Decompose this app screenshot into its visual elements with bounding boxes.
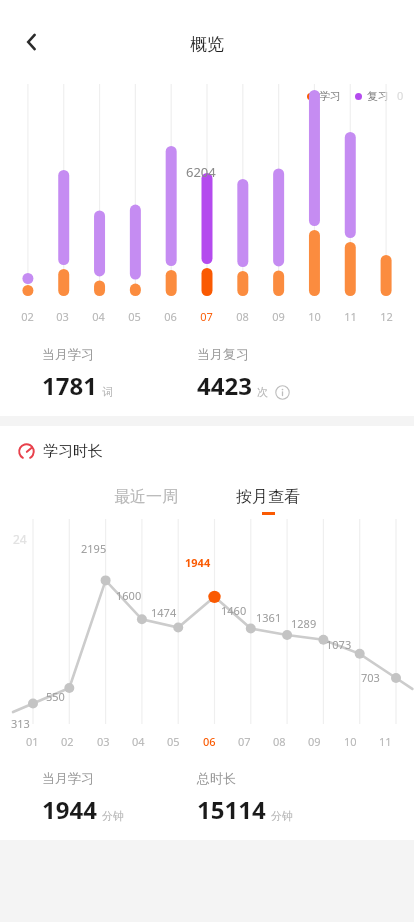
staticText: 01 (26, 734, 39, 749)
staticText: 12 (380, 309, 393, 324)
staticText: 2195 (81, 541, 107, 556)
staticText: 当月复习 (197, 346, 249, 362)
button[interactable]: 最近一周 (100, 483, 192, 511)
staticText: 6204 (186, 163, 216, 181)
staticText: 次 (257, 385, 268, 399)
staticText: 09 (272, 309, 285, 324)
button[interactable]: 当月学习 (42, 346, 197, 402)
staticText: 703 (361, 670, 380, 685)
staticText: 1073 (326, 637, 352, 652)
button[interactable]: 当月复习 (197, 346, 290, 402)
staticText: 05 (128, 309, 141, 324)
staticText: 04 (92, 309, 105, 324)
button[interactable]: 按月查看 (222, 483, 314, 519)
button[interactable]: 总时长 (197, 770, 293, 826)
staticText: 当月学习 (42, 346, 94, 362)
staticText: 学习 (319, 89, 341, 103)
staticText: 11 (344, 309, 357, 324)
staticText: 1781 (42, 369, 97, 402)
staticText: 15114 (197, 793, 266, 826)
staticText: 06 (164, 309, 177, 324)
staticText: 08 (273, 734, 286, 749)
staticText: 04 (132, 734, 145, 749)
staticText: 分钟 (102, 809, 124, 823)
staticText: 1944 (42, 793, 97, 826)
staticText: 1460 (221, 603, 247, 618)
button[interactable]: Back (8, 18, 56, 66)
button[interactable]: 当月学习 (42, 770, 197, 826)
staticText: 02 (61, 734, 74, 749)
staticText: 当月学习 (42, 770, 94, 786)
staticText: 24 (13, 531, 27, 547)
staticText: 550 (46, 689, 65, 704)
staticText: 07 (238, 734, 251, 749)
staticText: 08 (236, 309, 249, 324)
staticText: 03 (56, 309, 69, 324)
staticText: 11 (379, 734, 392, 749)
staticText: 0 (397, 88, 404, 103)
button[interactable]: Info (275, 385, 290, 400)
staticText: 1944 (185, 555, 211, 570)
staticText: 复习 (367, 89, 389, 103)
staticText: 按月查看 (236, 487, 300, 507)
staticText: 学习时长 (43, 442, 103, 461)
staticText: 10 (344, 734, 357, 749)
staticText: 05 (167, 734, 180, 749)
staticText: 总时长 (197, 770, 236, 786)
staticText: 10 (308, 309, 321, 324)
staticText: 313 (11, 716, 30, 731)
staticText: 概览 (190, 34, 224, 55)
staticText: 09 (308, 734, 321, 749)
staticText: 1474 (151, 605, 177, 620)
staticText: 分钟 (271, 809, 293, 823)
staticText: 词 (102, 385, 113, 399)
staticText: 07 (200, 309, 213, 324)
staticText: 4423 (197, 369, 252, 402)
staticText: 02 (21, 309, 34, 324)
staticText: 06 (203, 734, 216, 749)
staticText: 03 (97, 734, 110, 749)
staticText: 1289 (291, 616, 317, 631)
staticText: 最近一周 (114, 487, 178, 507)
staticText: 1361 (256, 610, 282, 625)
staticText: 1600 (116, 588, 142, 603)
